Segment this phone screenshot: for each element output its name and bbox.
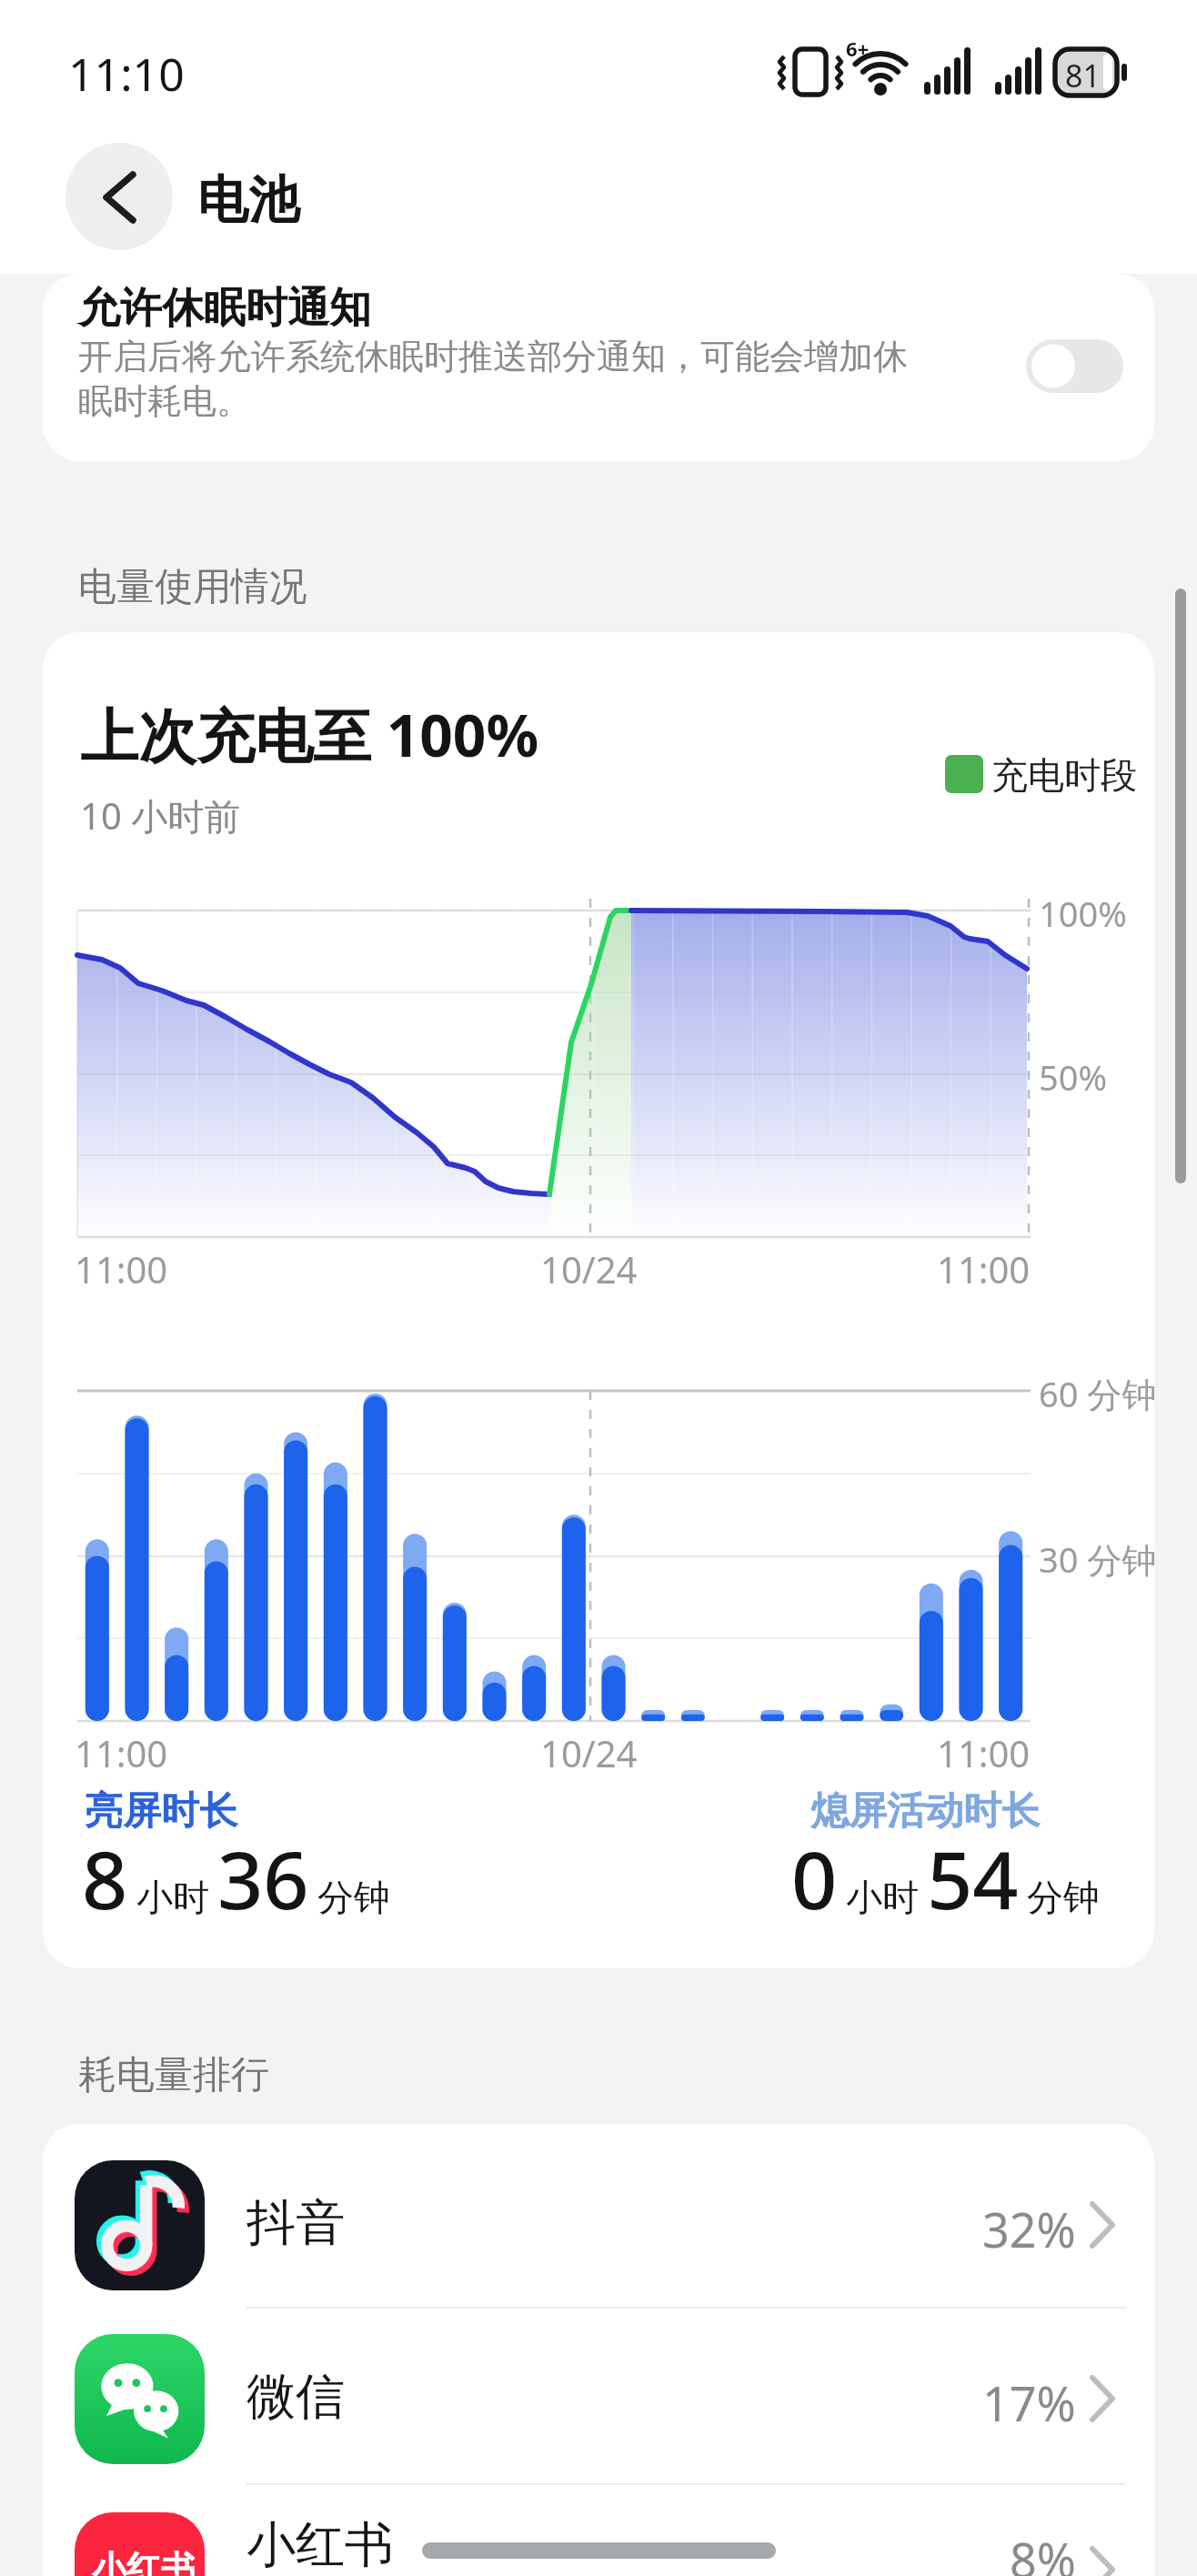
staticText: 11:00 (937, 1728, 1031, 1777)
staticText: 81 (1065, 55, 1101, 96)
staticText: 亮屏时长 (85, 1787, 237, 1836)
staticText: 熄屏活动时长 (810, 1787, 1040, 1836)
staticText: 11:00 (75, 1244, 168, 1293)
staticText: 允许休眠时通知 (78, 282, 371, 335)
staticText: 50% (1039, 1053, 1108, 1101)
staticText: 100% (1039, 890, 1127, 937)
button[interactable] (43, 2487, 1154, 2576)
staticText: 60 分钟 (1039, 1370, 1157, 1417)
staticText: 小时 (136, 1875, 209, 1920)
staticText: 耗电量排行 (78, 2051, 269, 2099)
staticText: 10/24 (540, 1728, 638, 1777)
staticText: 11:10 (68, 43, 185, 105)
staticText: 微信 (246, 2366, 345, 2428)
staticText: 17% (982, 2370, 1076, 2435)
button[interactable] (65, 143, 173, 250)
staticText: 10 小时前 (80, 790, 241, 840)
staticText: 电池 (197, 168, 299, 233)
staticText: 充电时段 (991, 752, 1137, 798)
staticText: 0 (791, 1824, 838, 1933)
staticText: 54 (927, 1824, 1019, 1933)
button[interactable] (43, 2138, 1154, 2308)
staticText: 10/24 (540, 1244, 638, 1293)
staticText: 小时 (846, 1875, 919, 1920)
staticText: 6+ (846, 35, 870, 62)
staticText: 分钟 (1027, 1875, 1100, 1920)
staticText: 32% (982, 2197, 1076, 2261)
staticText: 小红书 (92, 2547, 196, 2576)
staticText: 开启后将允许系统休眠时推送部分通知，可能会增加休 眠时耗电。 (78, 335, 908, 423)
staticText: 分钟 (317, 1875, 390, 1920)
staticText: 11:00 (75, 1728, 168, 1777)
button[interactable] (43, 2310, 1154, 2484)
staticText: 抖音 (246, 2192, 345, 2254)
staticText: 8 (82, 1824, 128, 1933)
staticText: 电量使用情况 (78, 563, 307, 611)
button[interactable] (43, 274, 1154, 461)
staticText: 30 分钟 (1039, 1535, 1157, 1583)
staticText: 小红书 (246, 2514, 394, 2576)
staticText: 11:00 (937, 1244, 1031, 1293)
staticText: 8% (1010, 2527, 1076, 2576)
staticText: 上次充电至 100% (80, 695, 539, 774)
staticText: 36 (217, 1824, 309, 1933)
